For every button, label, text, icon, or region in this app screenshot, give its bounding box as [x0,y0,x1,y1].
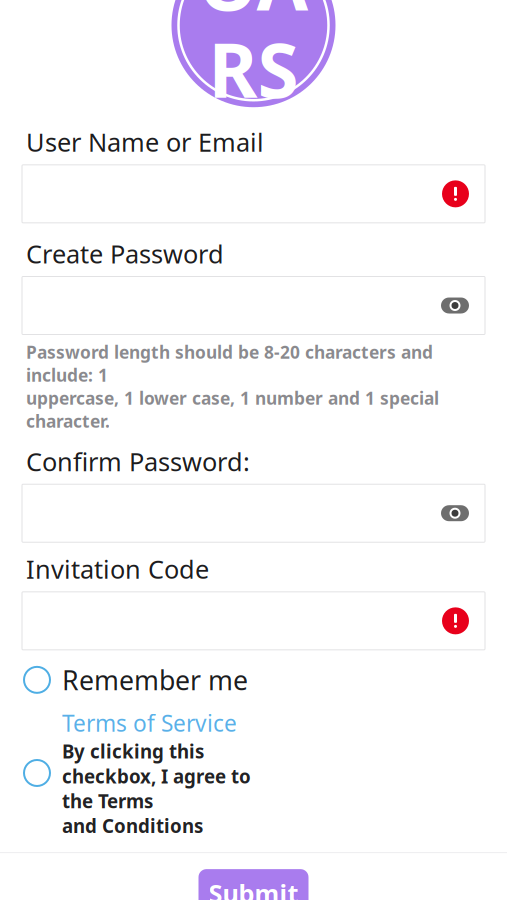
staticText: RS [208,19,298,118]
staticText: Confirm Password: [26,445,250,478]
staticText: Create Password [26,237,224,270]
staticText: Submit [208,876,298,900]
staticText: Terms of Service [62,708,237,738]
button[interactable] [0,276,507,334]
button[interactable]: Remember me [0,658,507,702]
staticText: OA [198,0,308,31]
staticText: Invitation Code [26,552,209,586]
button[interactable]: Submit [198,869,308,900]
staticText: User Name or Email [26,125,264,159]
button[interactable]: Terms of Service [0,708,507,838]
button[interactable] [0,165,507,223]
staticText: Password length should be 8-20 character… [26,340,439,433]
button[interactable] [0,592,507,650]
button[interactable] [0,484,507,542]
staticText: Remember me [62,662,248,698]
staticText: By clicking this checkbox, I agree to th… [62,739,251,838]
